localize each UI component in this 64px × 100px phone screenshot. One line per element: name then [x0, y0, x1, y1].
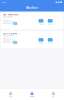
staticText: Updated 10m [3, 22, 14, 24]
staticText: Today [29, 95, 34, 97]
staticText: Humidity 62% [3, 20, 13, 22]
staticText: H 21 L 14 [3, 17, 9, 20]
staticText: Tmrw [48, 42, 53, 44]
button[interactable]: Tmrw [47, 19, 54, 25]
button[interactable]: Today [21, 92, 43, 97]
staticText: Me [52, 95, 54, 97]
staticText: Today [38, 23, 43, 25]
staticText: Weather [26, 6, 38, 10]
staticText: Los Angeles [3, 32, 17, 35]
button[interactable]: Today [37, 38, 44, 44]
button[interactable]: Los Angeles [1, 31, 63, 48]
staticText: H 28 L 18 [3, 36, 9, 39]
staticText: Today [38, 42, 43, 44]
staticText: Cities [9, 95, 13, 97]
button[interactable]: Me [43, 92, 64, 97]
button[interactable]: Tmrw [47, 38, 54, 44]
staticText: 9:41 [2, 1, 6, 3]
staticText: Tmrw [48, 23, 53, 25]
staticText: Updated 12m [3, 41, 14, 43]
button[interactable]: Today [37, 19, 44, 25]
staticText: San Francisco [3, 13, 18, 16]
button[interactable]: San Francisco [1, 12, 63, 29]
button[interactable]: Cities [0, 92, 21, 97]
staticText: Humidity 44% [3, 39, 13, 41]
staticText: Partly cloudy [3, 15, 13, 18]
staticText: Mostly sunny [3, 34, 14, 37]
